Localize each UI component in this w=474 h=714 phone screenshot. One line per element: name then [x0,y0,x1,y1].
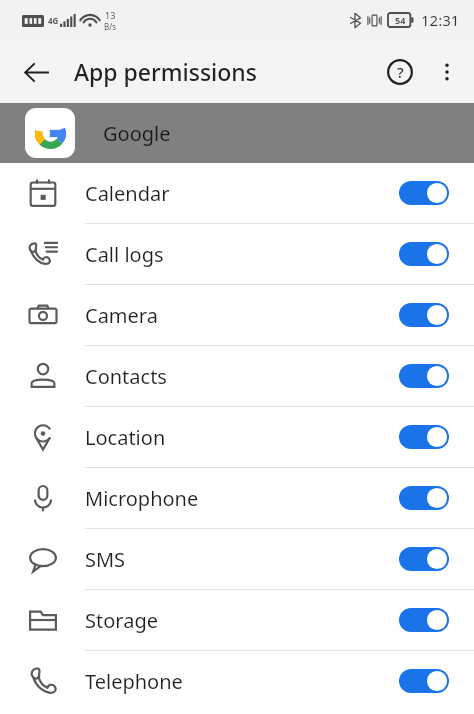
button[interactable]: Call logs [0,224,474,284]
staticText: Google [103,120,171,147]
button[interactable]: Camera permission toggle [399,303,449,327]
staticText: 12:31 [421,10,460,30]
staticText: Camera [85,302,158,329]
staticText: ? [397,62,404,82]
button[interactable]: Telephone permission toggle [399,669,449,693]
staticText: B/s [104,21,117,32]
button[interactable]: Storage permission toggle [399,608,449,632]
button[interactable]: Calendar [0,163,474,223]
button[interactable]: Storage [0,590,474,650]
staticText: Microphone [85,485,199,512]
button[interactable]: Help [376,48,424,96]
button[interactable]: Back [12,48,60,96]
staticText: Call logs [85,241,164,268]
staticText: 54 [395,14,406,26]
button[interactable]: SMS [0,529,474,589]
button[interactable]: More options [424,49,470,95]
button[interactable]: Camera [0,285,474,345]
button[interactable]: Contacts [0,346,474,406]
button[interactable]: SMS permission toggle [399,547,449,571]
staticText: App permissions [74,56,257,87]
button[interactable]: Location [0,407,474,467]
button[interactable]: Microphone [0,468,474,528]
staticText: Contacts [85,363,167,390]
staticText: Calendar [85,180,170,207]
button[interactable]: Call logs permission toggle [399,242,449,266]
button[interactable]: Telephone [0,651,474,711]
button[interactable]: Microphone permission toggle [399,486,449,510]
staticText: Telephone [85,668,183,695]
staticText: SMS [85,546,126,573]
staticText: 4G [48,15,59,26]
staticText: Location [85,424,166,451]
staticText: Storage [85,607,158,634]
button[interactable]: Location permission toggle [399,425,449,449]
staticText: 13 [105,9,116,21]
button[interactable]: Contacts permission toggle [399,364,449,388]
button[interactable]: Calendar permission toggle [399,181,449,205]
button[interactable]: Google [0,103,474,163]
